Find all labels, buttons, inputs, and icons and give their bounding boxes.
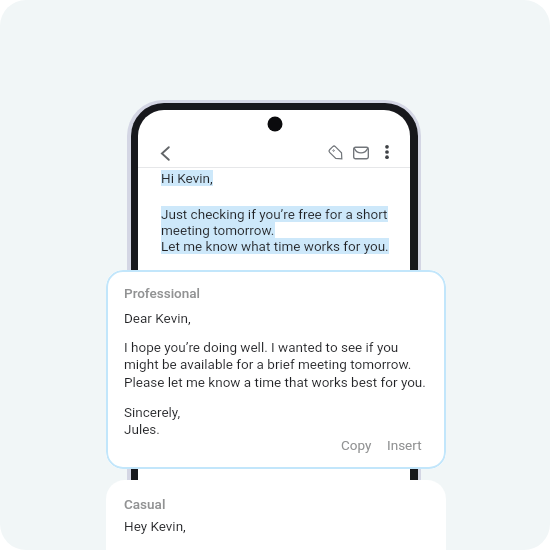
staticText: Just checking if you’re free for a short — [161, 206, 388, 222]
staticText: Hey Kevin, — [124, 518, 186, 534]
staticText: Casual — [124, 496, 166, 512]
staticText: I hope you’re doing well. I wanted to se… — [124, 339, 426, 391]
staticText: Let me know what time works for you. — [161, 238, 389, 254]
staticText: Professional — [124, 285, 201, 301]
button[interactable]: Casual — [106, 480, 446, 550]
staticText: Hi Kevin, — [161, 170, 213, 186]
button[interactable]: More options — [375, 140, 399, 164]
staticText: Copy — [341, 437, 372, 453]
staticText: Insert — [387, 437, 422, 453]
button[interactable]: Professional — [106, 270, 446, 469]
button[interactable]: Insert — [380, 432, 429, 458]
button[interactable]: Copy — [334, 432, 379, 458]
button[interactable]: Back — [152, 140, 178, 166]
button[interactable]: Mail — [348, 140, 374, 166]
staticText: meeting tomorrow. — [161, 222, 275, 238]
staticText: Sincerely, Jules. — [124, 404, 181, 438]
staticText: Dear Kevin, — [124, 310, 191, 326]
button[interactable]: Label — [323, 140, 349, 166]
